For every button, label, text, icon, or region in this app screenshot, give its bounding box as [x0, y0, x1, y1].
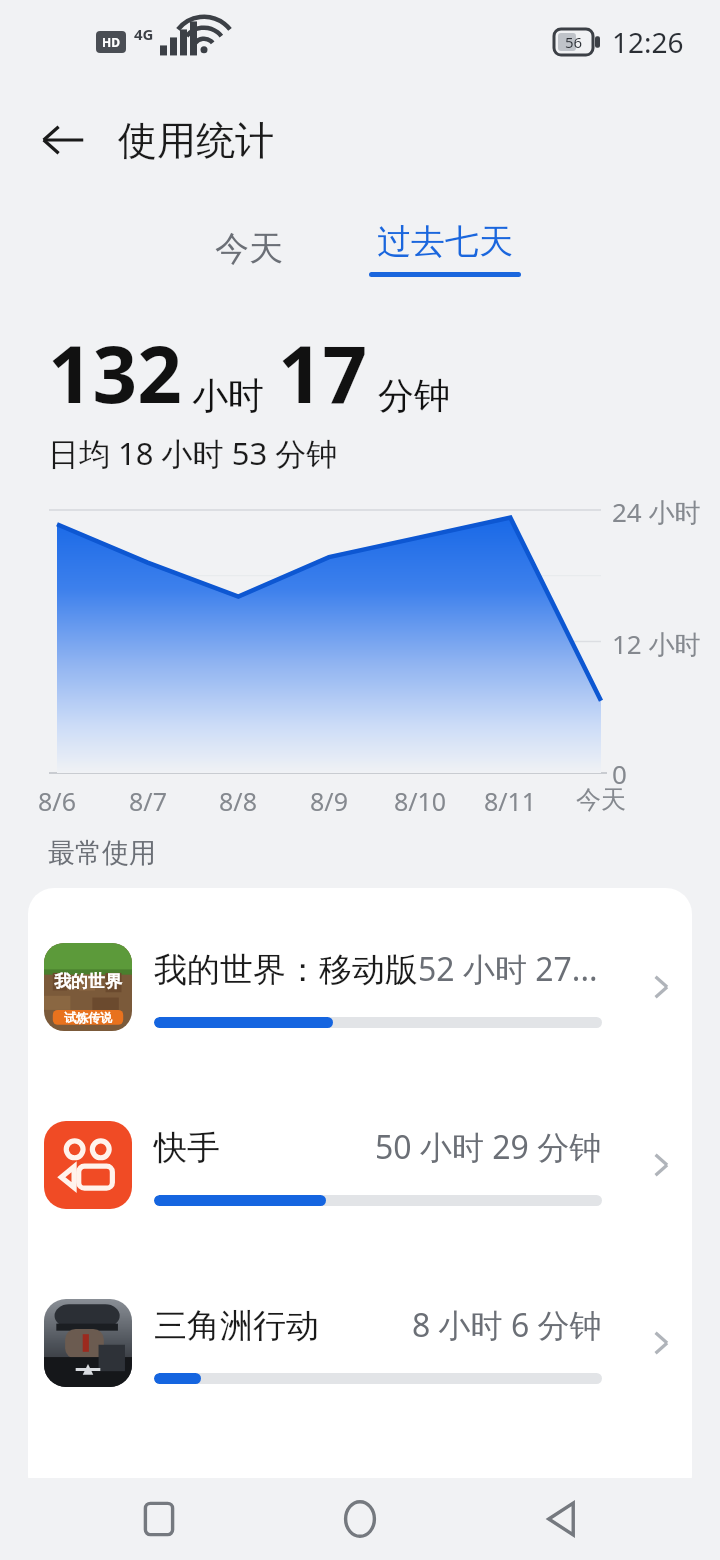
staticText: 小时: [192, 373, 264, 418]
button[interactable]: 返回: [519, 1478, 603, 1560]
staticText: 50 小时 29 分钟: [375, 1125, 602, 1169]
button[interactable]: 三角洲行动: [28, 1254, 692, 1432]
staticText: 4G: [134, 24, 154, 44]
button[interactable]: 过去七天: [357, 220, 533, 277]
staticText: 8/7: [110, 784, 186, 818]
staticText: 使用统计: [118, 116, 274, 165]
staticText: 0: [612, 756, 627, 791]
staticText: 8/11: [472, 784, 548, 818]
staticText: 三角洲行动: [154, 1305, 319, 1347]
staticText: 8/9: [291, 784, 367, 818]
button[interactable]: 今天: [187, 215, 311, 282]
staticText: 最常使用: [48, 836, 156, 870]
staticText: 8 小时 6 分钟: [412, 1303, 602, 1347]
button[interactable]: 快手: [28, 1076, 692, 1254]
staticText: 分钟: [378, 373, 450, 418]
staticText: 8/8: [200, 784, 276, 818]
button[interactable]: 返回: [28, 105, 98, 175]
staticText: 17: [278, 320, 368, 426]
staticText: 52 小时 27...: [418, 947, 598, 991]
staticText: 24 小时: [612, 494, 701, 530]
staticText: 过去七天: [377, 220, 513, 263]
staticText: 快手: [154, 1127, 220, 1169]
button[interactable]: 最近任务: [117, 1478, 201, 1560]
staticText: 132: [48, 320, 182, 426]
staticText: 今天: [563, 784, 639, 815]
staticText: 日均 18 小时 53 分钟: [48, 432, 338, 474]
staticText: 今天: [215, 227, 283, 270]
staticText: 8/6: [19, 784, 95, 818]
button[interactable]: 主页: [318, 1478, 402, 1560]
button[interactable]: 我的世界: [28, 898, 692, 1076]
staticText: 试炼传说: [64, 1010, 112, 1025]
staticText: 12 小时: [612, 626, 701, 662]
staticText: 我的世界: [54, 971, 122, 992]
staticText: 我的世界：移动版: [154, 949, 418, 991]
staticText: 8/10: [382, 784, 458, 818]
staticText: HD: [102, 34, 120, 50]
staticText: 56: [565, 32, 583, 52]
staticText: 12:26: [612, 23, 684, 61]
